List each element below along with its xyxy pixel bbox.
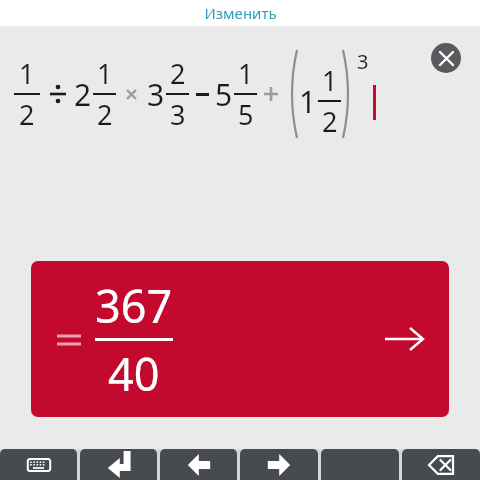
- button[interactable]: Space: [321, 449, 399, 480]
- staticText: 40: [108, 343, 160, 404]
- staticText: 1: [19, 55, 35, 92]
- button[interactable]: Delete: [402, 449, 480, 480]
- staticText: 2: [97, 96, 113, 133]
- button[interactable]: Изменить: [0, 0, 480, 26]
- button[interactable]: Enter: [80, 449, 157, 480]
- staticText: 5: [238, 96, 254, 133]
- staticText: 1: [238, 55, 254, 92]
- button[interactable]: Close: [431, 43, 461, 73]
- button[interactable]: Move right: [240, 449, 318, 480]
- staticText: 1: [97, 55, 113, 92]
- staticText: 2: [322, 103, 338, 140]
- staticText: 5: [215, 74, 233, 115]
- staticText: 1: [322, 62, 338, 99]
- button[interactable]: 367: [31, 261, 449, 417]
- staticText: 2: [74, 74, 92, 115]
- staticText: 367: [95, 275, 173, 336]
- staticText: 2: [19, 96, 35, 133]
- button[interactable]: Keyboard: [0, 449, 77, 480]
- staticText: 1: [299, 81, 317, 122]
- staticText: 3: [357, 48, 369, 75]
- staticText: Изменить: [204, 3, 277, 23]
- staticText: 3: [147, 74, 165, 115]
- button[interactable]: Move left: [160, 449, 237, 480]
- staticText: 3: [170, 96, 186, 133]
- button[interactable]: Next: [381, 316, 427, 362]
- staticText: 2: [170, 55, 186, 92]
